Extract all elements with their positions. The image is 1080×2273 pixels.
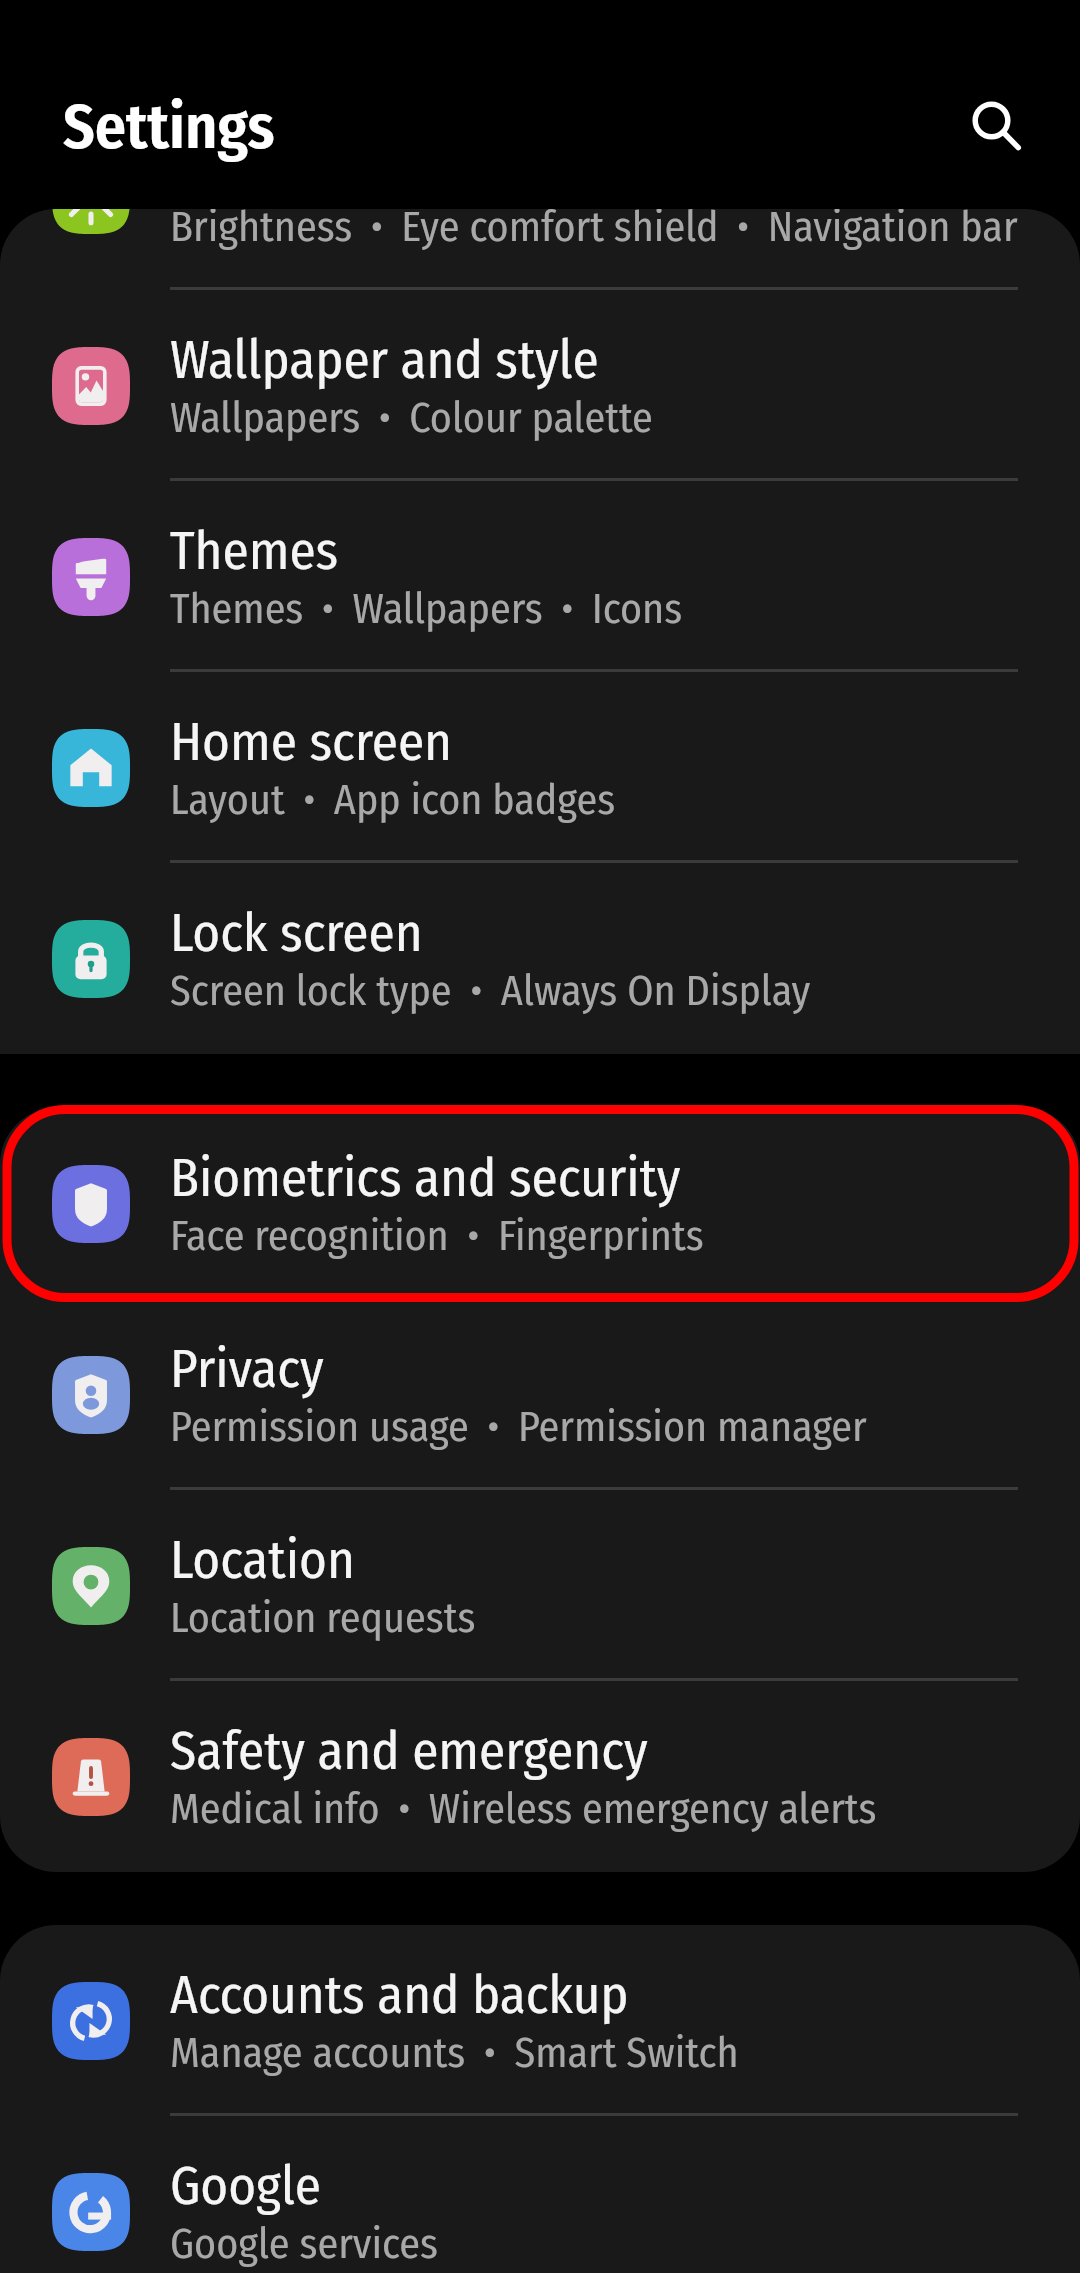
staticText: Location (170, 1528, 355, 1592)
button[interactable]: Search (938, 67, 1045, 174)
button[interactable]: Location (0, 1490, 1080, 1681)
staticText: Google services (170, 2219, 438, 2269)
staticText: Lock screen (170, 901, 423, 965)
button[interactable]: Home screen (0, 672, 1080, 863)
button[interactable]: Lock screen (0, 863, 1080, 1054)
staticText: Face recognition • Fingerprints (170, 1211, 704, 1261)
staticText: Screen lock type • Always On Display (170, 966, 811, 1016)
staticText: Themes • Wallpapers • Icons (170, 584, 683, 634)
staticText: Brightness • Eye comfort shield • Naviga… (170, 209, 1018, 252)
staticText: Accounts and backup (170, 1963, 629, 2027)
button[interactable]: Google (0, 2116, 1080, 2273)
staticText: Wallpapers • Colour palette (170, 393, 653, 443)
staticText: Safety and emergency (170, 1719, 648, 1783)
staticText: Permission usage • Permission manager (170, 1402, 867, 1452)
button[interactable]: Biometrics and security (0, 1108, 1080, 1299)
staticText: Privacy (170, 1337, 324, 1401)
staticText: Layout • App icon badges (170, 775, 616, 825)
button[interactable]: Safety and emergency (0, 1681, 1080, 1872)
staticText: Wallpaper and style (170, 328, 599, 392)
staticText: Manage accounts • Smart Switch (170, 2028, 739, 2078)
staticText: Themes (170, 519, 339, 583)
staticText: Google (170, 2154, 321, 2218)
button[interactable]: Privacy (0, 1299, 1080, 1490)
staticText: Medical info • Wireless emergency alerts (170, 1784, 877, 1834)
button[interactable]: Accounts and backup (0, 1925, 1080, 2116)
staticText: Location requests (170, 1593, 476, 1643)
button[interactable]: Display (0, 209, 1080, 290)
staticText: Biometrics and security (170, 1146, 681, 1210)
button[interactable]: Wallpaper and style (0, 290, 1080, 481)
staticText: Home screen (170, 710, 453, 774)
staticText: Settings (63, 90, 275, 164)
button[interactable]: Themes (0, 481, 1080, 672)
